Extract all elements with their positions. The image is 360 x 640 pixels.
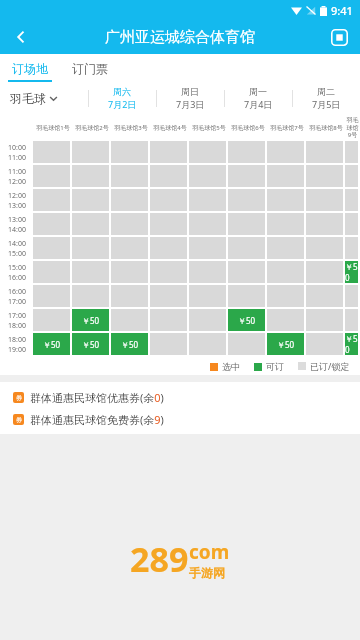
staticText: 7月3日 <box>176 98 205 110</box>
button[interactable]: ￥50 <box>111 333 148 355</box>
staticText: 羽毛球 <box>10 91 46 106</box>
button[interactable]: Back <box>0 20 42 54</box>
button[interactable]: 羽毛球 <box>0 82 88 114</box>
button[interactable]: ￥50 <box>345 261 358 283</box>
staticText: 12:00 <box>8 191 26 201</box>
button[interactable]: 周日 <box>156 82 224 114</box>
button[interactable]: 券 <box>0 386 360 408</box>
button[interactable]: ￥50 <box>345 333 358 355</box>
button[interactable]: 券 <box>0 408 360 430</box>
button[interactable]: ￥50 <box>72 309 109 331</box>
button[interactable]: 周二 <box>292 82 360 114</box>
button[interactable]: ￥50 <box>33 333 70 355</box>
staticText: 11:00 <box>8 153 26 163</box>
button[interactable]: 订场地 <box>0 54 60 82</box>
staticText: 羽毛球馆4号 <box>153 124 187 132</box>
button[interactable]: ￥50 <box>267 333 304 355</box>
button[interactable]: ￥50 <box>228 309 265 331</box>
button[interactable]: 周六 <box>88 82 156 114</box>
staticText: 13:00 <box>8 201 26 211</box>
button[interactable]: 订门票 <box>60 54 120 82</box>
button[interactable]: Menu <box>318 20 360 54</box>
staticText: 群体通惠民球馆优惠券(余0) <box>30 390 164 405</box>
button[interactable]: ￥50 <box>72 333 109 355</box>
button[interactable]: 周一 <box>224 82 292 114</box>
staticText: 羽毛球馆7号 <box>270 124 304 132</box>
